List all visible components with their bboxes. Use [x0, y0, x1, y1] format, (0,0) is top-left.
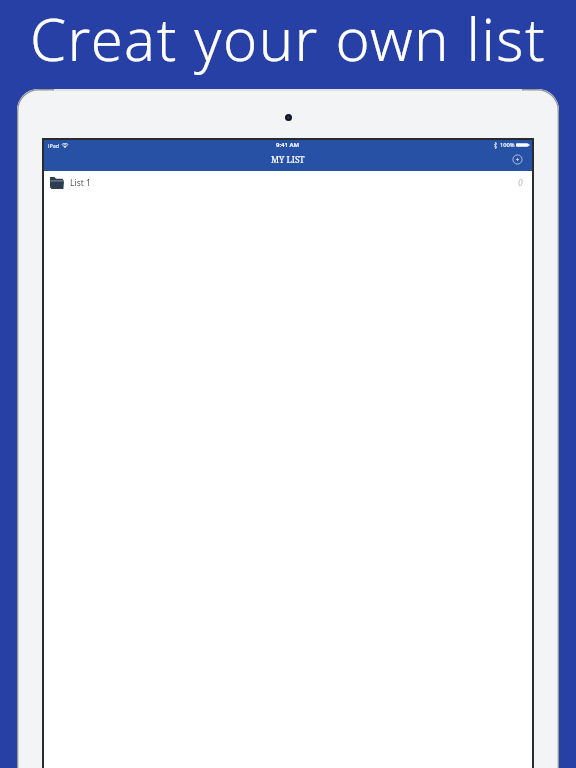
- staticText: 100%: [500, 141, 515, 149]
- button[interactable]: List 1: [44, 171, 532, 194]
- staticText: List 1: [70, 177, 91, 189]
- staticText: Creat your own list: [0, 0, 576, 78]
- staticText: MY LIST: [271, 154, 305, 166]
- staticText: 9:41 AM: [276, 141, 300, 149]
- staticText: 0: [518, 177, 523, 189]
- staticText: iPad: [48, 142, 60, 149]
- button[interactable]: Add list: [511, 153, 524, 166]
